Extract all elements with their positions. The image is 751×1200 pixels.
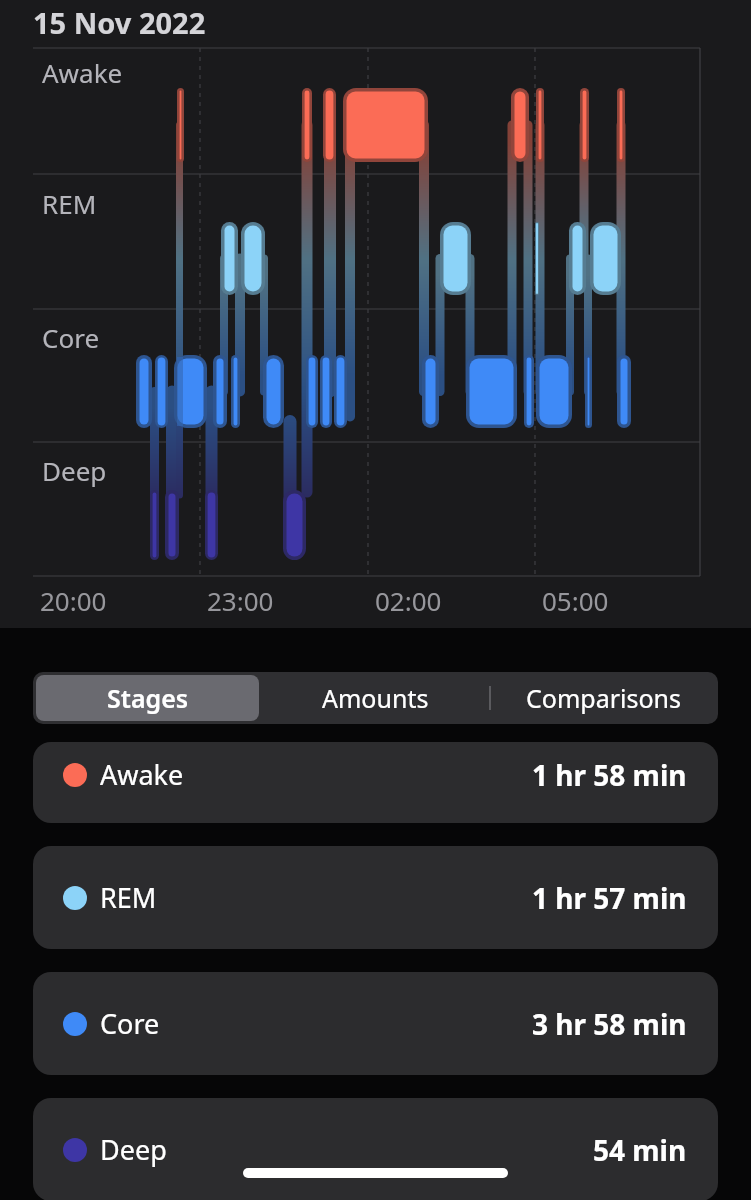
button[interactable]: Core bbox=[33, 972, 718, 1075]
button[interactable]: Stages bbox=[36, 675, 259, 721]
staticText: 1 hr 58 min bbox=[532, 756, 687, 794]
staticText: Stages bbox=[107, 681, 189, 715]
button[interactable]: Awake bbox=[33, 742, 718, 823]
staticText: 3 hr 58 min bbox=[532, 1005, 687, 1043]
staticText: 02:00 bbox=[375, 583, 442, 618]
staticText: 15 Nov 2022 bbox=[33, 3, 206, 42]
staticText: REM bbox=[42, 186, 97, 221]
staticText: 23:00 bbox=[207, 583, 274, 618]
button[interactable]: Deep bbox=[33, 1098, 718, 1200]
staticText: 05:00 bbox=[542, 583, 609, 618]
staticText: Core bbox=[100, 1005, 160, 1042]
staticText: REM bbox=[100, 879, 157, 916]
staticText: Amounts bbox=[322, 681, 429, 715]
staticText: Core bbox=[42, 320, 100, 355]
staticText: Awake bbox=[100, 756, 184, 793]
staticText: Deep bbox=[42, 453, 107, 488]
staticText: Deep bbox=[100, 1131, 167, 1168]
staticText: 1 hr 57 min bbox=[532, 879, 687, 917]
staticText: Awake bbox=[42, 55, 123, 90]
button[interactable]: REM bbox=[33, 846, 718, 949]
button[interactable]: Amounts bbox=[261, 672, 490, 724]
staticText: 54 min bbox=[593, 1131, 687, 1169]
staticText: Comparisons bbox=[526, 681, 682, 715]
staticText: 20:00 bbox=[40, 583, 107, 618]
button[interactable]: Comparisons bbox=[490, 672, 718, 724]
